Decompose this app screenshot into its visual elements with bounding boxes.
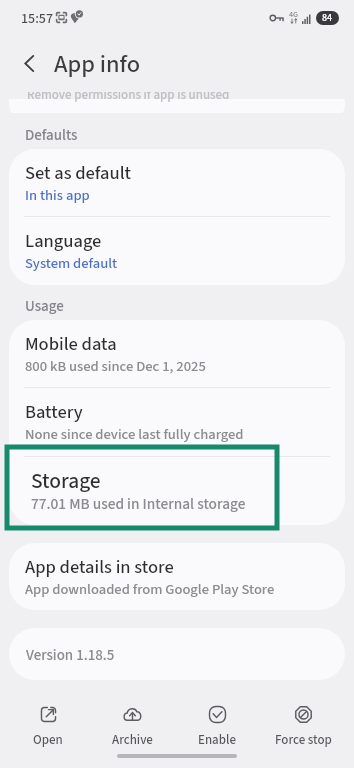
- staticText: Defaults: [25, 125, 78, 146]
- staticText: Mobile data: [25, 331, 117, 357]
- staticText: 800 kB used since Dec 1, 2025: [25, 356, 206, 377]
- staticText: Version 1.18.5: [26, 645, 115, 666]
- button[interactable]: Language: [9, 217, 345, 285]
- button[interactable]: Force stop: [261, 705, 345, 749]
- staticText: 4G: [289, 9, 299, 20]
- staticText: Usage: [25, 296, 64, 317]
- staticText: App downloaded from Google Play Store: [25, 579, 275, 600]
- staticText: Battery: [25, 399, 83, 425]
- staticText: Archive: [112, 731, 153, 749]
- staticText: Set as default: [25, 160, 131, 186]
- staticText: System default: [25, 253, 118, 274]
- button[interactable]: Enable: [175, 705, 259, 749]
- button[interactable]: Set as default: [9, 149, 345, 217]
- button[interactable]: Archive: [90, 705, 174, 749]
- staticText: Enable: [198, 731, 236, 749]
- staticText: 77.01 MB used in Internal storage: [31, 493, 246, 515]
- staticText: 84: [322, 11, 333, 25]
- staticText: App info: [54, 47, 141, 82]
- staticText: In this app: [25, 185, 90, 206]
- button[interactable]: Storage: [9, 457, 345, 525]
- staticText: Storage: [31, 466, 101, 497]
- staticText: Open: [33, 731, 63, 749]
- button[interactable]: Mobile data: [9, 320, 345, 388]
- button[interactable]: Open: [6, 705, 90, 749]
- staticText: Remove permissions if app is unused: [27, 92, 230, 105]
- staticText: 15:57: [21, 9, 53, 29]
- staticText: Force stop: [275, 731, 332, 749]
- staticText: Language: [25, 228, 102, 254]
- button[interactable]: Battery: [9, 388, 345, 456]
- staticText: None since device last fully charged: [25, 424, 244, 445]
- button[interactable]: Back: [16, 50, 42, 76]
- staticText: App details in store: [25, 554, 174, 580]
- button[interactable]: App details in store: [9, 543, 345, 610]
